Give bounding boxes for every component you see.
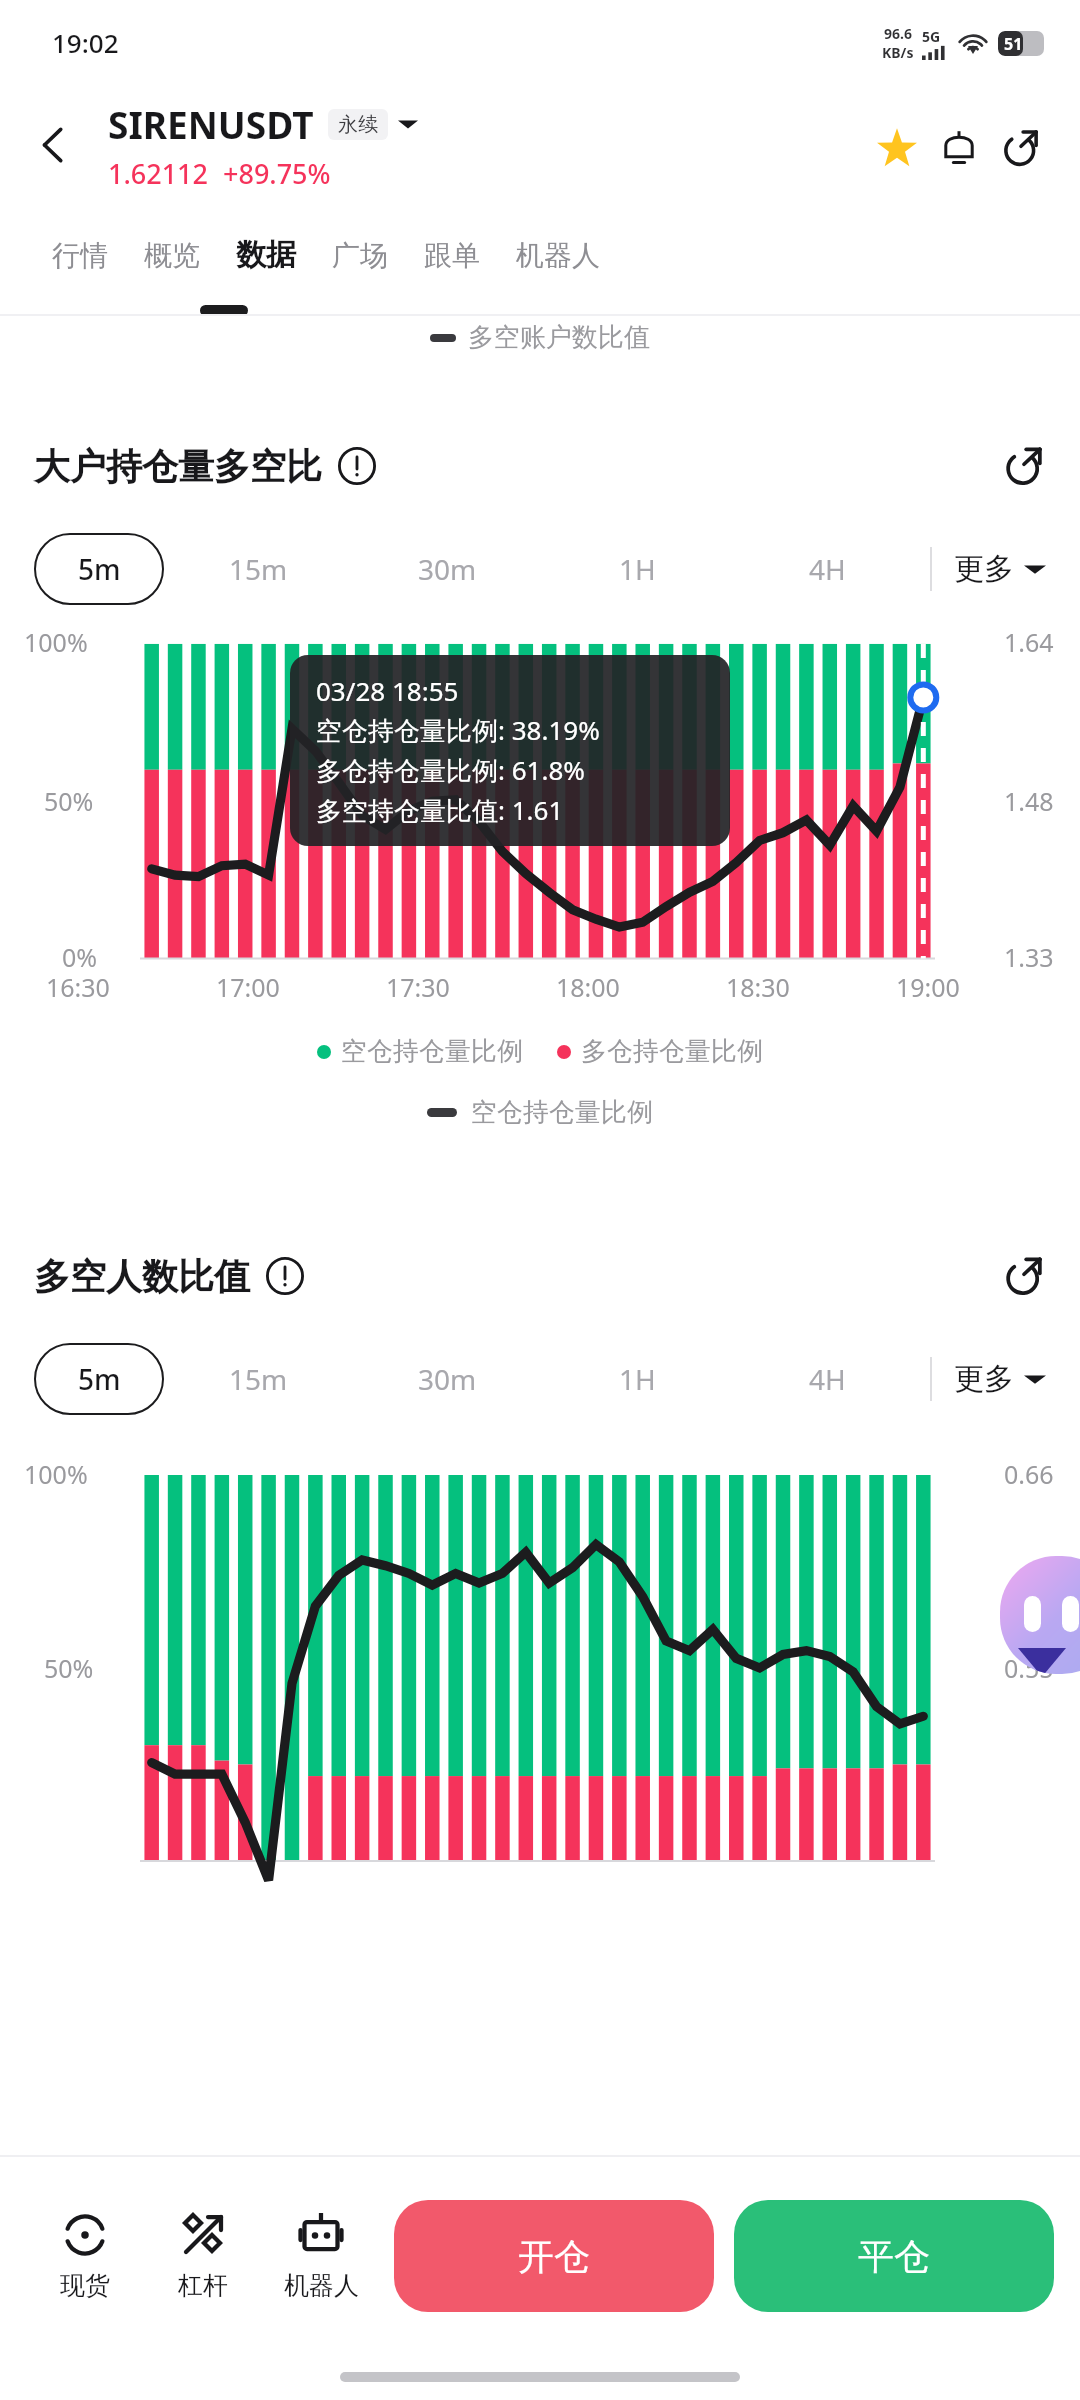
staticText: 96.6 [884, 24, 912, 43]
button[interactable]: 广场 [314, 226, 406, 285]
staticText: 跟单 [424, 238, 480, 273]
staticText: 更多 [954, 1360, 1014, 1398]
button[interactable]: 概览 [126, 226, 218, 285]
staticText: 大户持仓量多空比 [34, 444, 322, 489]
button[interactable]: 30m [353, 1343, 542, 1415]
staticText: 15m [229, 1360, 288, 1398]
button[interactable]: 1H [542, 1343, 732, 1415]
staticText: 行情 [52, 238, 108, 273]
button[interactable]: 永续 [338, 112, 378, 137]
staticText: 19:02 [52, 25, 119, 60]
staticText: 多仓持仓量比例: 61.8% [316, 752, 585, 788]
other: Expand [398, 114, 418, 134]
button[interactable]: 现货 [26, 2204, 144, 2307]
staticText: 平仓 [858, 2234, 930, 2279]
staticText: 0% [62, 940, 98, 974]
button[interactable]: 更多 [954, 1350, 1046, 1408]
staticText: 100% [24, 625, 88, 659]
staticText: 多仓持仓量比例 [581, 1035, 763, 1068]
staticText: 多空账户数比值 [468, 321, 650, 354]
staticText: 18:30 [726, 970, 790, 1001]
button[interactable]: Back [26, 117, 82, 173]
staticText: 03/28 18:55 [316, 673, 459, 708]
staticText: 更多 [954, 550, 1014, 588]
staticText: 17:00 [216, 970, 280, 1001]
staticText: 现货 [60, 2270, 110, 2301]
button[interactable]: 15m [164, 533, 353, 605]
staticText: 4H [809, 550, 846, 588]
button[interactable]: Assistant [1000, 1556, 1080, 1674]
button[interactable]: Info [338, 447, 376, 485]
staticText: SIRENUSDT [108, 99, 314, 149]
staticText: 19:00 [896, 970, 960, 1001]
staticText: 广场 [332, 238, 388, 273]
button[interactable]: 行情 [34, 226, 126, 285]
button[interactable]: 5m [34, 1343, 164, 1415]
button[interactable]: 数据 [218, 224, 314, 286]
staticText: 概览 [144, 238, 200, 273]
button[interactable]: 跟单 [406, 226, 498, 285]
staticText: 开仓 [518, 2234, 590, 2279]
staticText: KB/s [882, 43, 914, 62]
staticText: 18:00 [556, 970, 620, 1001]
staticText: 50% [44, 784, 94, 818]
staticText: 51 [1004, 33, 1023, 55]
staticText: 16:30 [46, 970, 110, 1001]
staticText: 5m [78, 1360, 121, 1398]
button[interactable]: 4H [732, 1343, 922, 1415]
button[interactable]: Alerts [928, 117, 990, 179]
staticText: 空仓持仓量比例 [471, 1096, 653, 1129]
staticText: 1.48 [1004, 784, 1054, 818]
staticText: 0.55 [1004, 1651, 1054, 1685]
staticText: 100% [24, 1457, 88, 1491]
button[interactable]: 更多 [954, 540, 1046, 598]
staticText: 永续 [338, 112, 378, 137]
staticText: +89.75% [223, 155, 331, 192]
button[interactable]: 杠杆 [144, 2204, 262, 2307]
staticText: 多空持仓量比值: 1.61 [316, 792, 564, 828]
staticText: 30m [418, 550, 477, 588]
staticText: 空仓持仓量比例: 38.19% [316, 712, 600, 748]
staticText: 1H [619, 550, 656, 588]
button[interactable]: 平仓 [734, 2200, 1054, 2312]
staticText: 1H [619, 1360, 656, 1398]
button[interactable]: 机器人 [262, 2204, 380, 2307]
staticText: 17:30 [386, 970, 450, 1001]
staticText: 30m [418, 1360, 477, 1398]
staticText: 空仓持仓量比例 [341, 1035, 523, 1068]
staticText: 4H [809, 1360, 846, 1398]
button[interactable]: Info [266, 1257, 304, 1295]
staticText: 1.33 [1004, 940, 1054, 974]
staticText: 机器人 [516, 238, 600, 273]
button[interactable]: 15m [164, 1343, 353, 1415]
staticText: 1.62112 [108, 155, 209, 192]
button[interactable]: Share chart [1002, 1254, 1046, 1298]
staticText: 多空人数比值 [34, 1254, 250, 1299]
staticText: 5G [922, 27, 941, 46]
button[interactable]: Favorite [866, 117, 928, 179]
button[interactable]: 机器人 [498, 226, 618, 285]
button[interactable]: 30m [353, 533, 542, 605]
button[interactable]: Share chart [1002, 444, 1046, 488]
staticText: 杠杆 [178, 2270, 228, 2301]
button[interactable]: Share [990, 117, 1052, 179]
staticText: 数据 [236, 236, 296, 274]
button[interactable]: 5m [34, 533, 164, 605]
button[interactable]: 1H [542, 533, 732, 605]
staticText: 机器人 [284, 2270, 359, 2301]
staticText: 1.64 [1004, 625, 1054, 659]
button[interactable]: 开仓 [394, 2200, 714, 2312]
staticText: 0.66 [1004, 1457, 1054, 1491]
staticText: 5m [78, 550, 121, 588]
button[interactable]: 4H [732, 533, 922, 605]
staticText: 50% [44, 1651, 94, 1685]
staticText: 15m [229, 550, 288, 588]
